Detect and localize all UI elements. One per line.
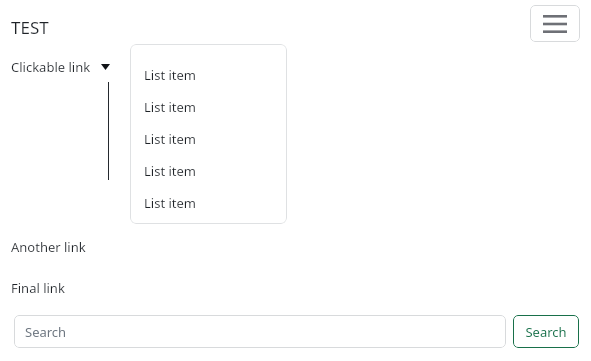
staticText: Search [25, 323, 67, 341]
staticText: List item [144, 162, 197, 180]
button[interactable]: List item [130, 91, 287, 123]
button[interactable]: List item [130, 59, 287, 91]
staticText: List item [144, 194, 197, 212]
staticText: Search [525, 323, 567, 341]
staticText: Final link [11, 279, 65, 297]
button[interactable]: List item [130, 187, 287, 219]
staticText: Another link [11, 238, 86, 256]
button[interactable]: List item [130, 123, 287, 155]
button[interactable]: Another link [6, 236, 91, 258]
button[interactable]: Search [513, 315, 579, 348]
button[interactable]: Search [14, 315, 506, 348]
staticText: List item [144, 130, 197, 148]
button[interactable]: List item [130, 155, 287, 187]
button[interactable]: Final link [6, 277, 70, 299]
button[interactable]: Clickable link [6, 56, 115, 78]
button[interactable]: Menu [530, 5, 580, 42]
staticText: TEST [11, 16, 49, 39]
staticText: List item [144, 98, 197, 116]
staticText: Clickable link [11, 58, 91, 76]
staticText: List item [144, 66, 197, 84]
